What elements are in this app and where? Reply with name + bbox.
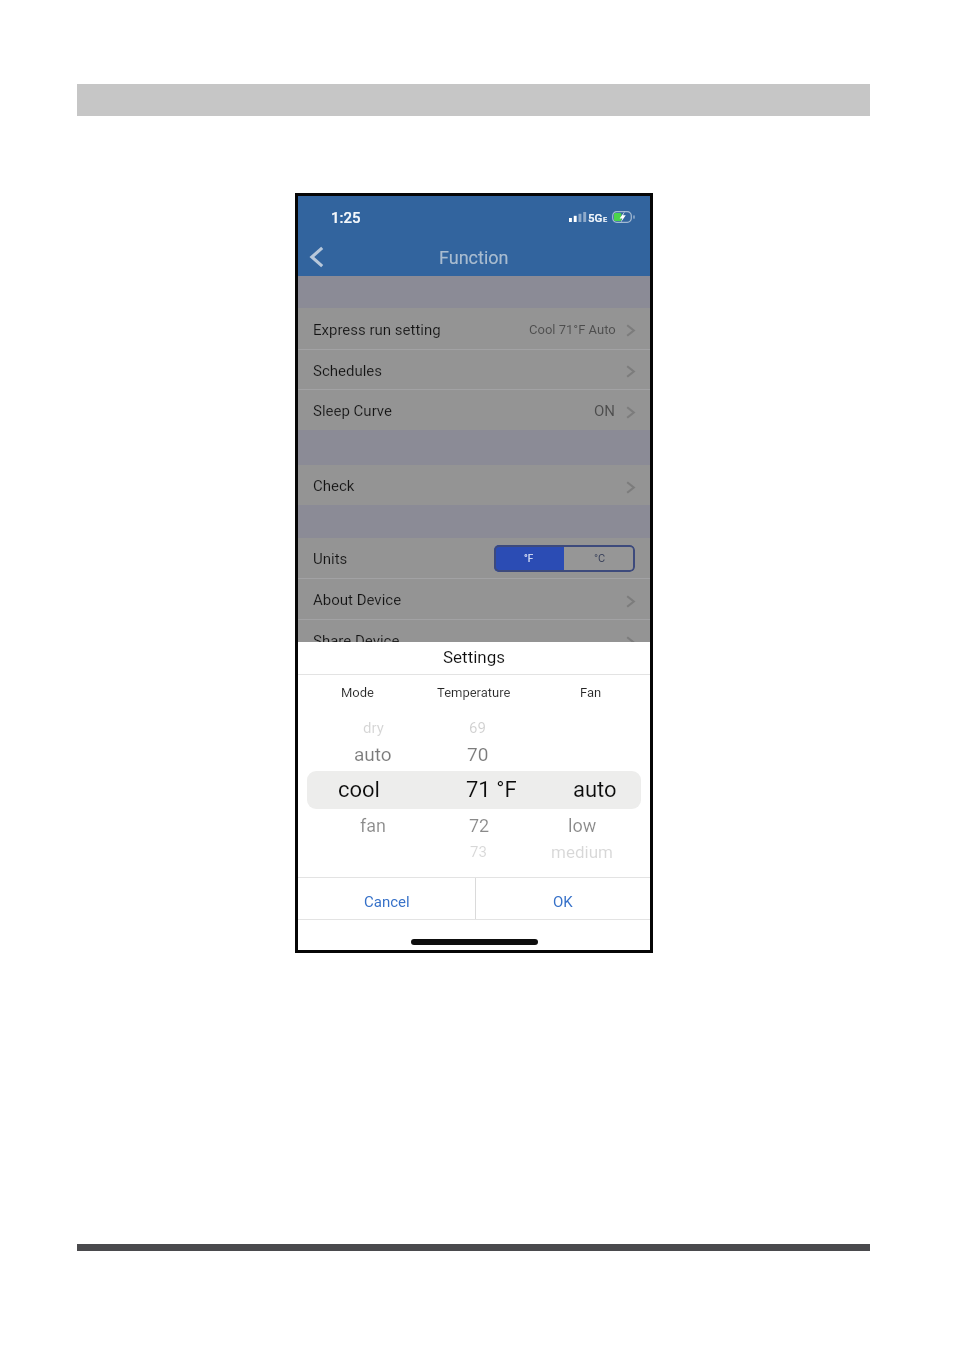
staticText: auto (354, 743, 392, 765)
staticText: OK (553, 893, 573, 911)
button[interactable]: About Device (298, 579, 650, 619)
staticText: Cool 71°F Auto (529, 322, 616, 337)
staticText: cool (338, 777, 380, 803)
staticText: 1:25 (331, 209, 361, 227)
staticText: Mode (341, 685, 374, 700)
button[interactable]: Sleep Curve (298, 390, 650, 430)
button[interactable]: Share Device (298, 620, 650, 660)
staticText: Units (313, 550, 348, 568)
button[interactable]: Check (298, 465, 650, 505)
staticText: E (603, 215, 608, 224)
staticText: 69 (469, 719, 486, 737)
button[interactable]: Back (302, 242, 332, 272)
button[interactable]: Temperature wheel (416, 706, 533, 869)
staticText: 73 (470, 843, 487, 861)
staticText: 72 (469, 815, 490, 836)
staticText: dry (363, 719, 384, 737)
staticText: Express run setting (313, 321, 441, 339)
staticText: ON (594, 402, 616, 420)
button[interactable]: OK (476, 881, 650, 922)
button[interactable]: Fan wheel (533, 706, 650, 869)
button[interactable]: Mode wheel (298, 706, 416, 869)
staticText: Sleep Curve (313, 402, 392, 420)
staticText: medium (551, 842, 613, 862)
staticText: Cancel (364, 893, 410, 911)
staticText: low (568, 815, 597, 836)
staticText: Fan (580, 685, 602, 700)
staticText: Share Device (313, 632, 400, 650)
staticText: °F (524, 553, 534, 565)
staticText: Function (439, 247, 509, 268)
staticText: About Device (313, 591, 402, 609)
staticText: Check (313, 477, 355, 495)
staticText: auto (573, 777, 617, 803)
button[interactable]: Cancel (298, 881, 475, 922)
button[interactable]: Fahrenheit (494, 545, 564, 572)
staticText: 5G (588, 211, 603, 224)
button[interactable]: Express run setting (298, 308, 650, 349)
staticText: 70 (467, 743, 489, 765)
staticText: Settings (443, 647, 506, 667)
staticText: 71 °F (466, 777, 517, 803)
button[interactable]: Celsius (564, 545, 635, 572)
staticText: °C (594, 552, 606, 565)
staticText: Schedules (313, 362, 383, 380)
staticText: fan (360, 815, 386, 836)
staticText: Temperature (437, 685, 511, 700)
button[interactable]: Schedules (298, 350, 650, 389)
